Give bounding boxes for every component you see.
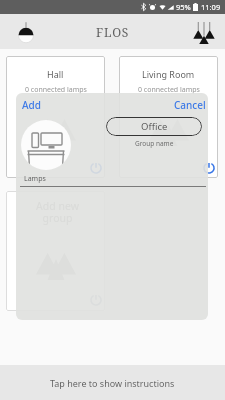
button[interactable]: Power	[203, 162, 215, 174]
button[interactable]: Lamps	[15, 22, 37, 44]
button[interactable]: Groups	[193, 22, 215, 44]
button[interactable]: Add new group	[6, 191, 105, 311]
button[interactable]: Group photo	[21, 120, 71, 170]
button[interactable]: Cancel	[174, 98, 206, 112]
staticText: Living Room	[142, 68, 195, 80]
staticText: Lamps	[24, 174, 46, 184]
staticText: Tap here to show instructions	[50, 377, 175, 389]
staticText: 11:09	[201, 2, 221, 12]
button[interactable]: Office	[106, 117, 202, 136]
button[interactable]: Power	[90, 162, 102, 174]
button[interactable]: Living Room	[119, 56, 218, 178]
staticText: Hall	[47, 68, 64, 80]
staticText: 0 connected lamps	[25, 85, 87, 95]
staticText: 0 connected lamps	[138, 85, 200, 95]
staticText: Group name	[135, 139, 174, 148]
staticText: 95%	[176, 2, 191, 12]
staticText: FLOS	[96, 24, 130, 40]
staticText: Office	[141, 120, 168, 133]
button[interactable]: Hall	[6, 56, 105, 178]
button[interactable]: Tap here to show instructions	[0, 365, 225, 400]
button[interactable]: Power	[90, 294, 102, 306]
button[interactable]: Add	[22, 98, 41, 112]
